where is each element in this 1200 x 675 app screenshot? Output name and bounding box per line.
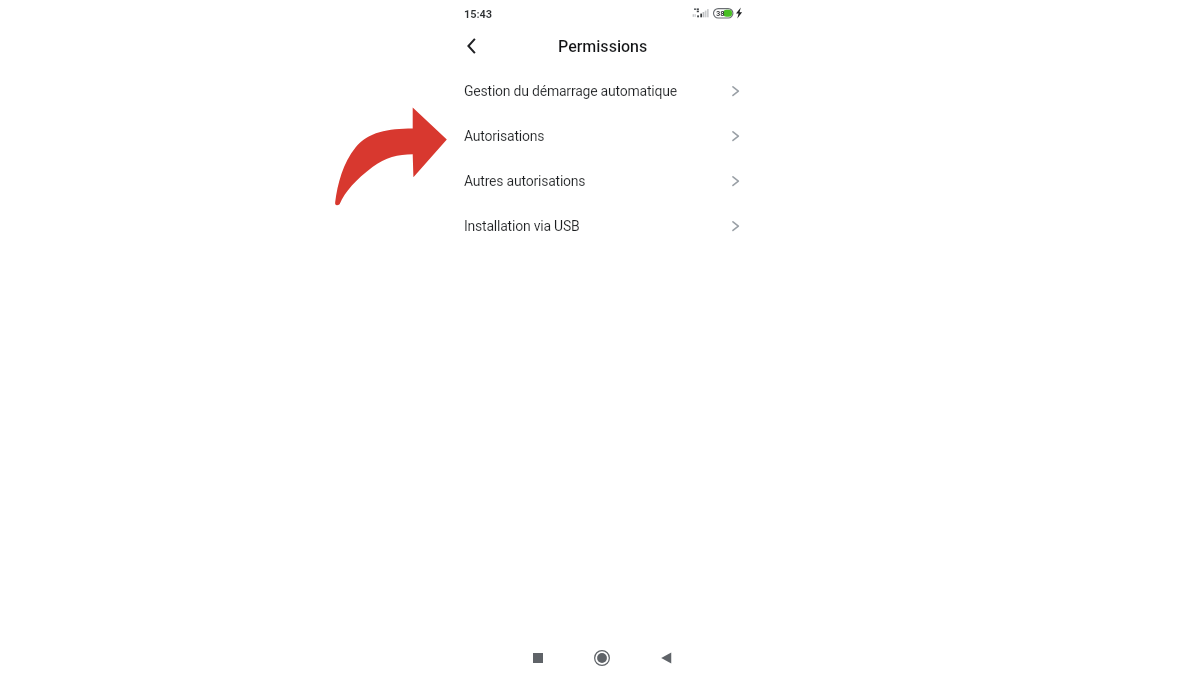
button[interactable]: Recent apps [523, 643, 553, 673]
button[interactable]: Autorisations [464, 113, 740, 158]
button[interactable]: Gestion du démarrage automatique [464, 68, 740, 113]
button[interactable]: Home [587, 643, 617, 673]
staticText: 38 [716, 9, 725, 18]
staticText: Installation via USB [464, 218, 580, 234]
button[interactable]: Back [651, 643, 681, 673]
button[interactable]: Installation via USB [464, 203, 740, 248]
staticText: Permissions [558, 37, 648, 56]
staticText: Gestion du démarrage automatique [464, 83, 677, 99]
staticText: Autorisations [464, 128, 545, 144]
staticText: Autres autorisations [464, 173, 586, 189]
button[interactable]: Autres autorisations [464, 158, 740, 203]
button[interactable]: Back [454, 28, 490, 64]
staticText: 15:43 [464, 8, 492, 21]
